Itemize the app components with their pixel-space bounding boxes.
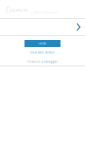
staticText: A LIFESTYLE JOURNAL bbox=[30, 11, 58, 14]
staticText: Home bbox=[38, 42, 46, 45]
button[interactable]: Home bbox=[24, 40, 60, 47]
button[interactable]: Older Posts bbox=[73, 19, 83, 35]
button[interactable]: Blogger bbox=[45, 60, 57, 63]
staticText: Carmen bbox=[6, 4, 28, 14]
staticText: Blogger bbox=[45, 60, 57, 63]
button[interactable]: View web version bbox=[30, 51, 55, 54]
staticText: View web version bbox=[30, 51, 55, 54]
staticText: Powered by bbox=[27, 60, 44, 63]
